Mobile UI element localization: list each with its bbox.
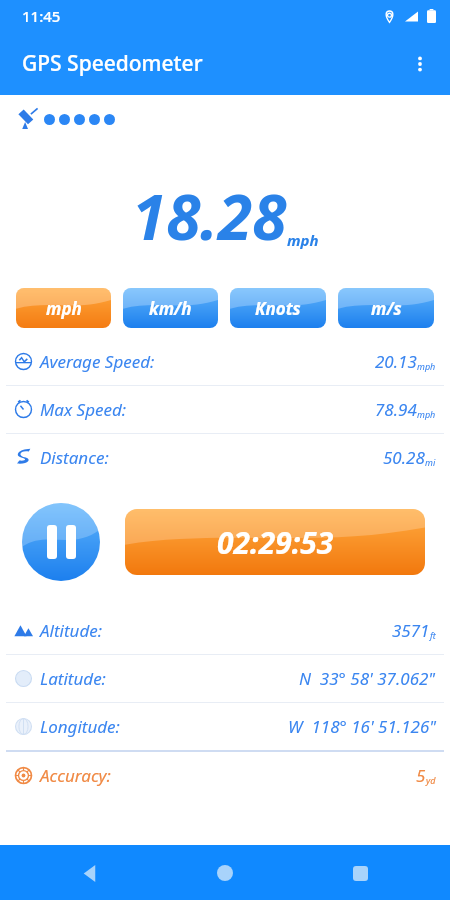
staticText: mph (417, 408, 436, 420)
staticText: 02:29:53 (217, 522, 334, 563)
staticText: mph (287, 230, 319, 250)
staticText: 18.28 (132, 174, 287, 258)
staticText: Average Speed: (40, 350, 155, 373)
staticText: W 118° 16' 51.126" (288, 715, 436, 738)
staticText: Altitude: (40, 619, 103, 642)
staticText: m/s (371, 297, 402, 320)
staticText: km/h (149, 297, 192, 320)
staticText: yd (426, 774, 436, 786)
button[interactable]: Average Speed: (0, 338, 450, 385)
staticText: ft (430, 629, 436, 641)
button[interactable]: Longitude: (0, 703, 450, 750)
button[interactable]: Max Speed: (0, 386, 450, 433)
button[interactable]: Home (205, 853, 245, 893)
staticText: 78.94 (375, 398, 417, 421)
button[interactable]: Back (70, 853, 110, 893)
staticText: Latitude: (40, 667, 106, 690)
staticText: 20.13 (375, 350, 417, 373)
staticText: 3571 (392, 619, 430, 642)
staticText: Accuracy: (40, 764, 111, 787)
staticText: 5 (416, 764, 426, 787)
button[interactable]: Latitude: (0, 655, 450, 702)
button[interactable]: More options (398, 42, 442, 86)
staticText: mi (425, 456, 436, 468)
staticText: 11:45 (22, 6, 61, 26)
staticText: Distance: (40, 446, 109, 469)
button[interactable]: Distance: (0, 434, 450, 481)
button[interactable]: km/h (123, 288, 218, 328)
button[interactable]: mph (16, 288, 111, 328)
staticText: GPS Speedometer (22, 49, 203, 78)
button[interactable]: 02:29:53 (125, 509, 425, 575)
staticText: N 33° 58' 37.062" (299, 667, 436, 690)
button[interactable]: Accuracy: (0, 752, 450, 799)
button[interactable]: m/s (338, 288, 434, 328)
button[interactable]: Knots (230, 288, 326, 328)
staticText: 50.28 (383, 446, 425, 469)
staticText: Max Speed: (40, 398, 127, 421)
staticText: mph (417, 360, 436, 372)
button[interactable]: Pause (22, 503, 100, 581)
staticText: Longitude: (40, 715, 120, 738)
staticText: mph (46, 297, 82, 320)
button[interactable]: Altitude: (0, 607, 450, 654)
button[interactable]: Recent apps (340, 853, 380, 893)
staticText: Knots (255, 297, 301, 320)
